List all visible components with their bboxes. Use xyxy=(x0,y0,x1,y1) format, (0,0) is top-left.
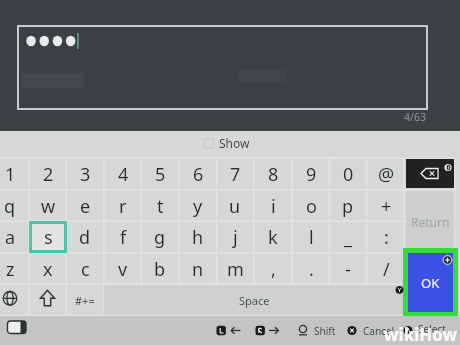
staticText: w xyxy=(41,194,56,219)
staticText: c xyxy=(81,257,90,282)
staticText: #+= xyxy=(75,293,95,308)
staticText: 9 xyxy=(306,162,317,187)
button[interactable]: #+= xyxy=(66,284,104,316)
button[interactable]: w xyxy=(29,190,67,222)
button[interactable]: q xyxy=(0,190,29,222)
staticText: 7 xyxy=(230,162,241,187)
button[interactable]: s xyxy=(29,221,67,253)
button[interactable]: p xyxy=(329,190,367,222)
staticText: + xyxy=(381,194,392,219)
button[interactable] xyxy=(203,138,214,149)
staticText: v xyxy=(118,257,128,282)
staticText: Return xyxy=(411,214,450,230)
staticText: h xyxy=(192,225,204,250)
button[interactable] xyxy=(406,159,454,188)
button[interactable]: OK xyxy=(408,253,453,312)
button[interactable]: Space xyxy=(104,285,404,315)
button[interactable]: 6 xyxy=(179,158,217,190)
staticText: OK xyxy=(421,274,440,292)
staticText: k xyxy=(268,225,278,250)
staticText: r xyxy=(119,194,127,219)
button[interactable]: u xyxy=(216,190,254,222)
staticText: i xyxy=(271,194,276,219)
button[interactable]: v xyxy=(104,253,142,285)
staticText: Shift xyxy=(314,324,336,337)
button[interactable]: z xyxy=(0,253,29,285)
staticText: y xyxy=(193,194,203,219)
button[interactable]: m xyxy=(216,253,254,285)
button[interactable]: Return xyxy=(406,191,454,252)
staticText: z xyxy=(6,257,15,282)
button[interactable]: 3 xyxy=(66,158,104,190)
staticText: n xyxy=(192,257,204,282)
button[interactable]: 8 xyxy=(254,158,292,190)
button[interactable]: l xyxy=(292,221,330,253)
button[interactable]: a xyxy=(0,221,29,253)
button[interactable] xyxy=(0,284,29,316)
button[interactable]: / xyxy=(367,253,405,285)
staticText: a xyxy=(5,225,16,250)
button[interactable]: _ xyxy=(329,221,367,253)
staticText: s xyxy=(44,225,53,250)
button[interactable]: o xyxy=(292,190,330,222)
staticText: t xyxy=(157,194,164,219)
staticText: j xyxy=(233,225,238,250)
staticText: o xyxy=(306,194,317,219)
button[interactable]: . xyxy=(292,253,330,285)
button[interactable]: r xyxy=(104,190,142,222)
staticText: 4 xyxy=(118,162,129,187)
button[interactable]: y xyxy=(179,190,217,222)
button[interactable] xyxy=(29,284,67,316)
button[interactable]: 7 xyxy=(216,158,254,190)
button[interactable]: + xyxy=(367,190,405,222)
button[interactable]: h xyxy=(179,221,217,253)
staticText: x xyxy=(43,257,53,282)
staticText: Space xyxy=(239,293,270,308)
staticText: 1 xyxy=(5,162,16,187)
button[interactable]: f xyxy=(104,221,142,253)
button[interactable]: , xyxy=(254,253,292,285)
button[interactable]: b xyxy=(141,253,179,285)
staticText: b xyxy=(154,257,166,282)
button[interactable]: 0 xyxy=(329,158,367,190)
staticText: g xyxy=(154,225,166,250)
button[interactable]: @ xyxy=(367,158,405,190)
button[interactable]: e xyxy=(66,190,104,222)
staticText: l xyxy=(309,225,314,250)
button[interactable]: c xyxy=(66,253,104,285)
button[interactable]: k xyxy=(254,221,292,253)
button[interactable]: i xyxy=(254,190,292,222)
button[interactable]: 2 xyxy=(29,158,67,190)
staticText: : xyxy=(384,225,389,250)
staticText: f xyxy=(120,225,127,250)
staticText: u xyxy=(229,194,241,219)
staticText: @ xyxy=(378,162,395,187)
button[interactable]: t xyxy=(141,190,179,222)
button[interactable]: - xyxy=(329,253,367,285)
button[interactable]: 1 xyxy=(0,158,29,190)
staticText: e xyxy=(80,194,91,219)
staticText: . xyxy=(309,257,314,282)
staticText: q xyxy=(4,194,16,219)
staticText: 3 xyxy=(80,162,91,187)
staticText: / xyxy=(383,257,390,282)
staticText: m xyxy=(227,257,244,282)
staticText: 5 xyxy=(155,162,166,187)
button[interactable]: 4 xyxy=(104,158,142,190)
staticText: 2 xyxy=(43,162,54,187)
staticText: , xyxy=(271,257,276,282)
button[interactable]: 9 xyxy=(292,158,330,190)
staticText: 4/63 xyxy=(404,110,426,124)
staticText: 8 xyxy=(268,162,279,187)
button[interactable]: x xyxy=(29,253,67,285)
staticText: 6 xyxy=(193,162,204,187)
button[interactable]: 5 xyxy=(141,158,179,190)
staticText: _ xyxy=(344,225,352,250)
button[interactable]: n xyxy=(179,253,217,285)
button[interactable]: d xyxy=(66,221,104,253)
button[interactable]: : xyxy=(367,221,405,253)
button[interactable]: g xyxy=(141,221,179,253)
button[interactable]: j xyxy=(216,221,254,253)
staticText: wikiHow xyxy=(384,323,458,343)
staticText: 0 xyxy=(343,162,354,187)
